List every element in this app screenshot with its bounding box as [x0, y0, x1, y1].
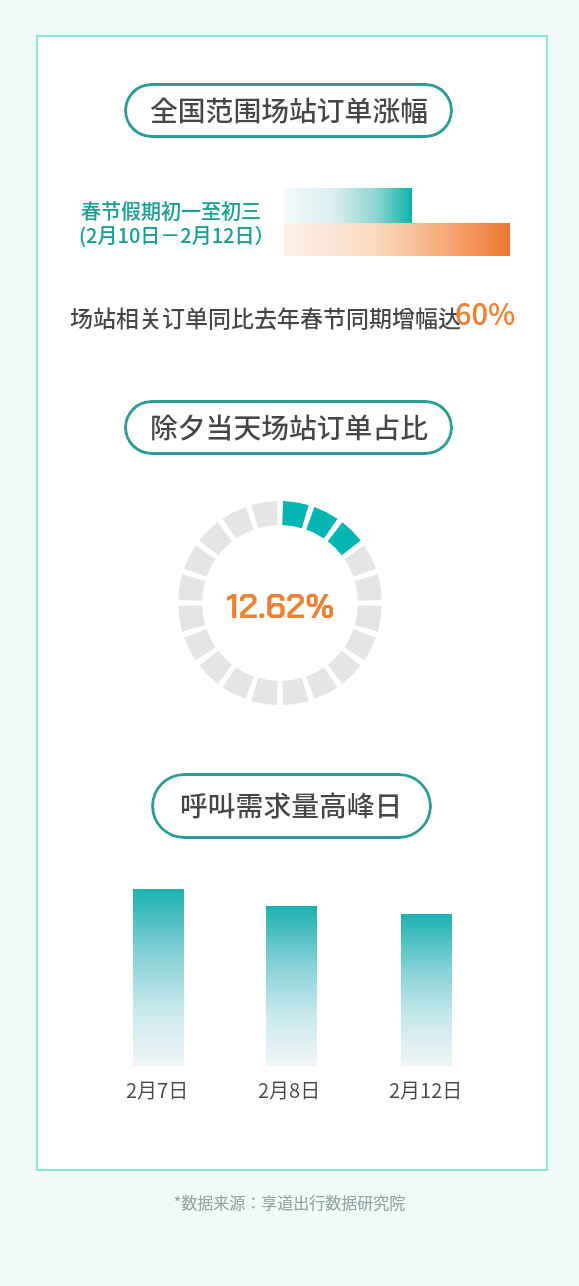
button[interactable]: 全国范围场站订单涨幅: [124, 83, 453, 138]
staticText: 60%: [455, 291, 516, 333]
staticText: 除夕当天场站订单占比: [150, 406, 428, 446]
staticText: 呼叫需求量高峰日: [180, 784, 403, 824]
staticText: 12.62%: [226, 584, 335, 628]
staticText: 2月12日: [389, 1075, 463, 1104]
button[interactable]: 呼叫需求量高峰日: [151, 773, 432, 839]
staticText: 2月8日: [258, 1075, 321, 1104]
staticText: 全国范围场站订单涨幅: [150, 89, 428, 129]
staticText: *数据来源：享道出行数据研究院: [0, 1190, 579, 1213]
staticText: 2月7日: [126, 1075, 189, 1104]
staticText: 场站相关订单同比去年春节同期增幅达: [70, 300, 461, 333]
button[interactable]: 除夕当天场站订单占比: [124, 400, 453, 455]
staticText: 春节假期初一至初三: [81, 196, 261, 225]
staticText: (2月10日－2月12日）: [79, 220, 275, 249]
